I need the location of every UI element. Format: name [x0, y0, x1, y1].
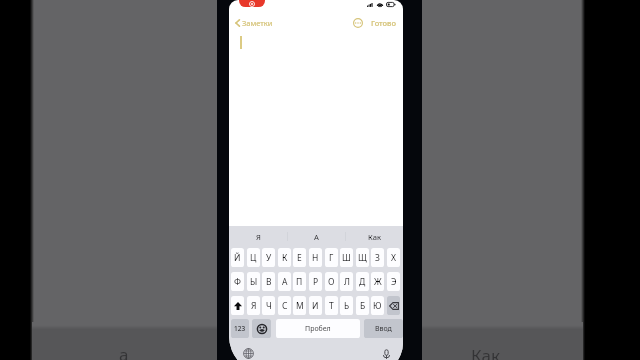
button[interactable]: А — [278, 272, 291, 291]
button[interactable]: А — [288, 226, 345, 247]
button[interactable]: Н — [309, 248, 322, 267]
staticText: А — [314, 232, 319, 242]
button[interactable]: Э — [387, 272, 400, 291]
staticText: а — [119, 343, 129, 360]
button[interactable]: Х — [387, 248, 400, 267]
button[interactable]: Щ — [356, 248, 369, 267]
button[interactable]: Emoji — [252, 319, 271, 338]
button[interactable]: Shift — [231, 296, 244, 315]
button[interactable]: Dictation — [379, 347, 393, 360]
button[interactable]: В — [262, 272, 275, 291]
button[interactable]: У — [262, 248, 275, 267]
staticText: Р — [313, 276, 319, 288]
button[interactable]: Г — [325, 248, 338, 267]
button[interactable]: Е — [293, 248, 306, 267]
button[interactable]: О — [325, 272, 338, 291]
staticText: С — [282, 300, 288, 312]
button[interactable]: М — [293, 296, 306, 315]
button[interactable]: Заметки — [233, 17, 275, 29]
staticText: 123 — [234, 324, 246, 333]
staticText: Как — [368, 232, 381, 242]
staticText: Ф — [234, 276, 241, 288]
button[interactable]: More options — [353, 18, 363, 28]
staticText: Ж — [374, 276, 382, 288]
button[interactable]: Б — [356, 296, 369, 315]
button[interactable]: Й — [231, 248, 244, 267]
staticText: Я — [256, 232, 261, 242]
button[interactable]: Пробел — [276, 319, 360, 338]
staticText: Э — [391, 276, 397, 288]
staticText: Т — [329, 300, 334, 312]
staticText: Ш — [342, 252, 351, 264]
staticText: В — [266, 276, 272, 288]
staticText: Й — [234, 252, 241, 264]
staticText: Заметки — [242, 18, 273, 28]
button[interactable]: Л — [340, 272, 353, 291]
button[interactable]: Я — [247, 296, 260, 315]
button[interactable]: Ч — [262, 296, 275, 315]
button[interactable]: 123 — [231, 319, 249, 338]
button[interactable]: С — [278, 296, 291, 315]
button[interactable]: Ю — [371, 296, 384, 315]
button[interactable]: И — [309, 296, 322, 315]
button[interactable]: Как — [346, 226, 403, 247]
button[interactable]: Д — [356, 272, 369, 291]
button[interactable]: Ж — [371, 272, 384, 291]
button[interactable]: Ы — [247, 272, 260, 291]
staticText: О — [328, 276, 335, 288]
staticText: Е — [297, 252, 302, 264]
button[interactable]: Ввод — [364, 319, 403, 338]
button[interactable]: Ь — [340, 296, 353, 315]
button[interactable]: Ф — [231, 272, 244, 291]
staticText: З — [375, 252, 380, 264]
staticText: М — [296, 300, 304, 312]
staticText: П — [296, 276, 303, 288]
button[interactable]: П — [293, 272, 306, 291]
staticText: Г — [329, 252, 334, 264]
staticText: И — [312, 300, 319, 312]
staticText: Я — [251, 300, 257, 312]
staticText: А — [282, 276, 288, 288]
staticText: Ь — [344, 300, 350, 312]
staticText: Готово — [371, 18, 396, 28]
button[interactable]: Backspace — [387, 296, 400, 315]
staticText: Ввод — [375, 324, 392, 334]
button[interactable]: Готово — [370, 17, 397, 29]
staticText: Как — [471, 344, 500, 360]
staticText: Б — [360, 300, 366, 312]
staticText: Щ — [358, 252, 367, 264]
button[interactable]: Т — [325, 296, 338, 315]
staticText: Л — [344, 276, 350, 288]
staticText: Ч — [266, 300, 272, 312]
staticText: Пробел — [305, 324, 331, 334]
staticText: Ю — [373, 300, 382, 312]
button[interactable]: Я — [229, 226, 287, 247]
staticText: Д — [359, 276, 366, 288]
button[interactable]: Ш — [340, 248, 353, 267]
staticText: Н — [312, 252, 319, 264]
button[interactable]: Change keyboard — [242, 347, 255, 360]
staticText: Ы — [250, 276, 258, 288]
button[interactable]: К — [278, 248, 291, 267]
staticText: Х — [391, 252, 396, 264]
staticText: Ц — [250, 252, 257, 264]
button[interactable]: Р — [309, 272, 322, 291]
button[interactable]: Ц — [247, 248, 260, 267]
staticText: У — [266, 252, 272, 264]
staticText: К — [282, 252, 288, 264]
button[interactable]: З — [371, 248, 384, 267]
